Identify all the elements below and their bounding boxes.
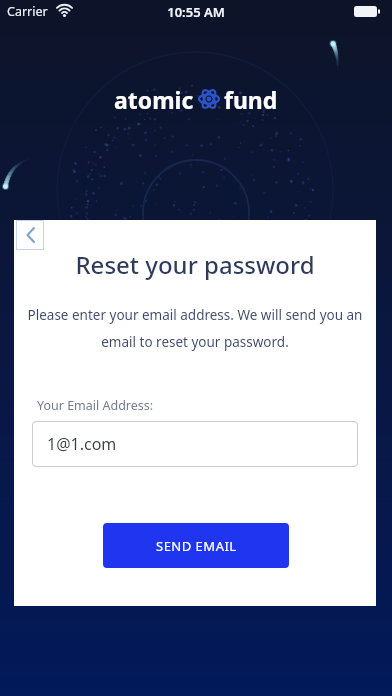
staticText: Please enter your email address. We will…: [14, 306, 376, 324]
staticText: email to reset your password.: [14, 333, 376, 351]
staticText: Carrier: [7, 3, 48, 20]
staticText: Reset your password: [14, 248, 376, 281]
button[interactable]: SEND EMAIL: [103, 523, 289, 568]
staticText: SEND EMAIL: [156, 537, 237, 555]
staticText: 1@1.com: [47, 433, 117, 455]
button[interactable]: [16, 220, 44, 250]
button[interactable]: 1@1.com: [32, 421, 358, 467]
staticText: Your Email Address:: [37, 397, 154, 414]
staticText: fund: [224, 84, 278, 114]
staticText: atomic: [114, 84, 194, 114]
staticText: 10:55 AM: [0, 3, 392, 21]
